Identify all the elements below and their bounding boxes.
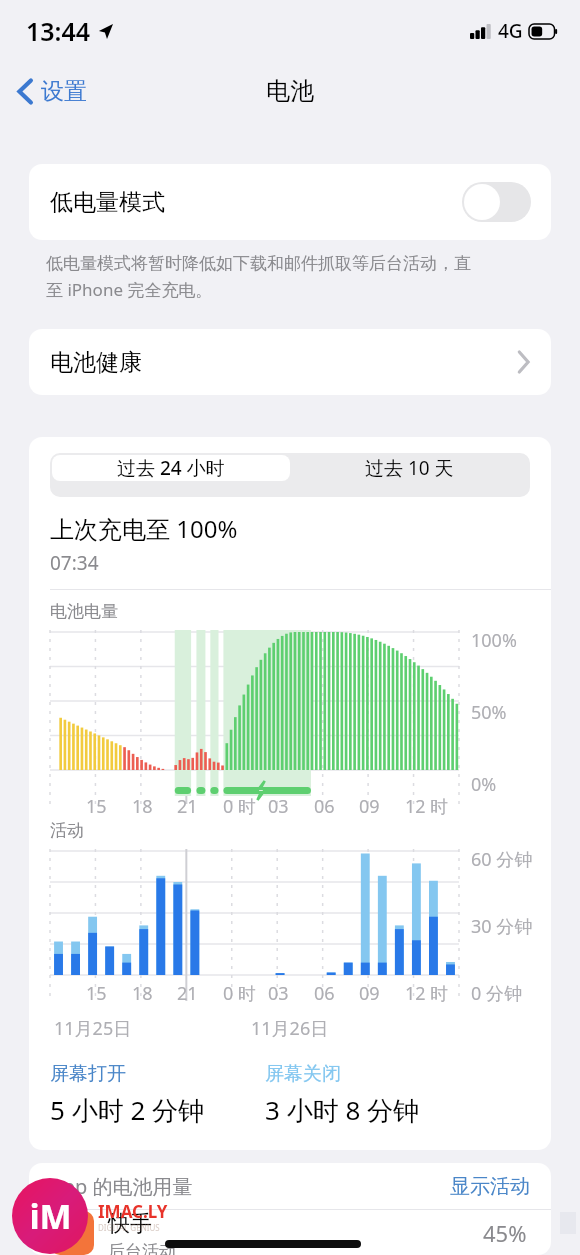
staticText: 30 分钟 [471,914,533,939]
staticText: 0 分钟 [471,981,522,1006]
staticText: 15 [86,794,107,819]
staticText: 21 [177,794,198,819]
staticText: iM [29,1193,72,1239]
staticText: 09 [359,981,380,1006]
staticText: 12 时 [405,794,449,819]
staticText: 至 iPhone 完全充电。 [46,278,213,301]
staticText: 3 小时 8 分钟 [265,1092,420,1128]
staticText: 电池电量 [50,601,118,622]
button[interactable]: 设置 [0,71,99,112]
staticText: 18 [132,794,153,819]
staticText: 0% [471,772,497,797]
staticText: App 的电池用量 [50,1173,193,1200]
staticText: 后台活动 [108,1241,176,1255]
staticText: 18 [132,981,153,1006]
staticText: 09 [359,794,380,819]
staticText: 过去 24 小时 [117,455,225,481]
staticText: 03 [268,981,289,1006]
button[interactable]: 低电量模式 [29,164,551,240]
staticText: 快手 [108,1210,152,1238]
staticText: 03 [268,794,289,819]
staticText: 显示活动 [450,1174,530,1199]
staticText: 屏幕关闭 [265,1062,341,1086]
staticText: 低电量模式 [50,188,165,217]
staticText: 0 时 [223,794,256,819]
button[interactable]: 快手 [29,1210,551,1255]
staticText: 06 [314,981,335,1006]
staticText: 06 [314,794,335,819]
button[interactable]: 电池健康 [29,329,551,395]
button[interactable]: 低电量模式开关 [462,182,531,222]
staticText: 过去 10 天 [365,455,454,481]
staticText: DIGITAL GENIUS [98,1222,160,1233]
staticText: 100% [471,628,517,653]
staticText: IMAC.LY [98,1200,168,1223]
staticText: 50% [471,700,507,725]
button[interactable]: 显示活动 [429,1168,551,1205]
staticText: 上次充电至 100% [50,512,238,545]
button[interactable]: 过去 24 小时 [52,455,290,481]
staticText: 60 分钟 [471,847,533,872]
staticText: 11月25日 [54,1016,132,1041]
button[interactable]: 过去 10 天 [290,455,528,481]
staticText: 设置 [41,77,87,106]
staticText: 45% [483,1218,527,1248]
staticText: 屏幕打开 [50,1062,126,1086]
staticText: 0 时 [223,981,256,1006]
staticText: 12 时 [405,981,449,1006]
staticText: 15 [86,981,107,1006]
staticText: 5 小时 2 分钟 [50,1092,205,1128]
staticText: 11月26日 [251,1016,329,1041]
staticText: 低电量模式将暂时降低如下载和邮件抓取等后台活动，直 [46,253,471,274]
staticText: 07:34 [50,550,99,576]
staticText: 13:44 [26,14,91,48]
staticText: 21 [177,981,198,1006]
staticText: 活动 [50,820,84,841]
staticText: 4G [498,18,523,44]
staticText: 电池 [266,76,314,106]
staticText: 电池健康 [50,348,142,377]
